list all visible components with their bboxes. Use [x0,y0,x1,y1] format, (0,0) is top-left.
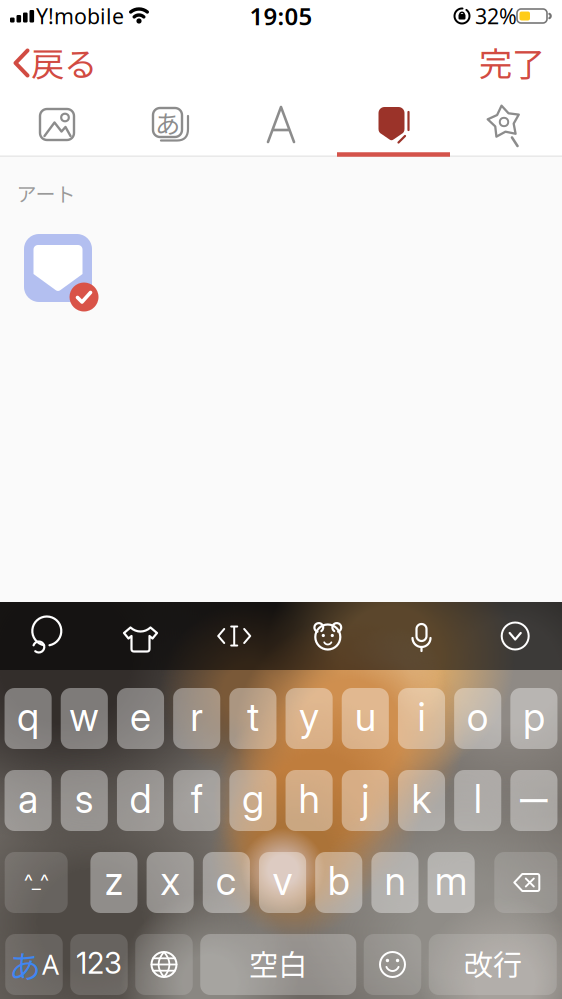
button[interactable]: a [4,770,52,831]
button[interactable]: v [259,852,306,913]
button[interactable]: d [117,770,164,831]
staticText: 空白 [249,942,307,984]
staticText: j [361,776,369,822]
staticText: h [299,776,320,822]
button[interactable]: h [285,770,333,831]
button[interactable]: o [454,688,501,749]
button[interactable]: t [229,688,276,749]
staticText: v [272,858,292,904]
staticText: t [247,694,259,740]
button[interactable]: k [398,770,445,831]
staticText: 完了 [479,38,545,86]
button[interactable]: p [510,688,557,749]
staticText: p [523,694,545,740]
staticText: 123 [76,945,122,981]
button[interactable]: l [454,770,501,831]
button[interactable] [24,234,92,302]
staticText: w [69,694,99,740]
staticText: c [216,858,237,904]
staticText: 戻る [31,38,97,86]
button[interactable]: 123 [70,934,128,995]
button[interactable] [449,94,561,156]
button[interactable]: w [61,688,108,749]
staticText: 32% [475,2,517,30]
staticText: z [104,858,123,904]
button[interactable]: 改行 [429,934,557,995]
button[interactable]: あ [5,934,63,995]
button[interactable] [494,852,557,913]
button[interactable]: j [342,770,389,831]
staticText: m [435,858,468,904]
button[interactable] [135,934,193,995]
staticText: q [17,694,39,740]
button[interactable]: c [203,852,250,913]
staticText: g [242,776,264,822]
staticText: 19:05 [249,0,312,32]
staticText: n [384,858,405,904]
button[interactable]: f [173,770,220,831]
button[interactable] [1,94,113,156]
staticText: Y!mobile [36,2,124,30]
staticText: A [42,947,59,982]
button[interactable]: y [285,688,333,749]
staticText: ー [516,774,551,824]
staticText: あ [155,104,180,141]
staticText: l [474,776,482,822]
button[interactable]: e [117,688,164,749]
button[interactable]: x [147,852,194,913]
button[interactable]: u [342,688,389,749]
staticText: あ [9,941,41,988]
button[interactable]: i [398,688,445,749]
button[interactable] [103,602,178,670]
staticText: k [411,776,431,822]
button[interactable]: ^_^ [5,852,68,913]
button[interactable]: s [61,770,108,831]
button[interactable]: 完了 [472,37,552,87]
button[interactable] [337,94,449,156]
button[interactable]: g [229,770,276,831]
button[interactable] [13,602,81,670]
button[interactable]: m [428,852,475,913]
staticText: 改行 [464,942,522,984]
staticText: e [130,694,151,740]
button[interactable] [294,602,362,670]
staticText: d [129,776,151,822]
staticText: アート [16,178,75,207]
staticText: x [160,858,180,904]
staticText: s [75,776,94,822]
staticText: a [18,776,38,822]
button[interactable]: 戻る [13,38,103,88]
staticText: o [467,694,489,740]
button[interactable] [481,602,549,670]
button[interactable]: b [315,852,362,913]
button[interactable]: n [371,852,418,913]
staticText: y [299,694,319,740]
button[interactable] [225,94,337,156]
button[interactable]: ー [510,770,557,831]
staticText: b [328,858,350,904]
button[interactable]: r [173,688,220,749]
button[interactable]: あ [113,94,225,156]
button[interactable] [387,602,455,670]
staticText: ^_^ [24,869,49,893]
button[interactable]: z [90,852,137,913]
staticText: f [191,776,203,822]
button[interactable] [200,602,268,670]
button[interactable] [364,934,421,995]
staticText: i [417,694,425,740]
staticText: u [355,694,376,740]
button[interactable]: q [4,688,52,749]
staticText: r [190,694,203,740]
button[interactable]: 空白 [200,934,356,995]
